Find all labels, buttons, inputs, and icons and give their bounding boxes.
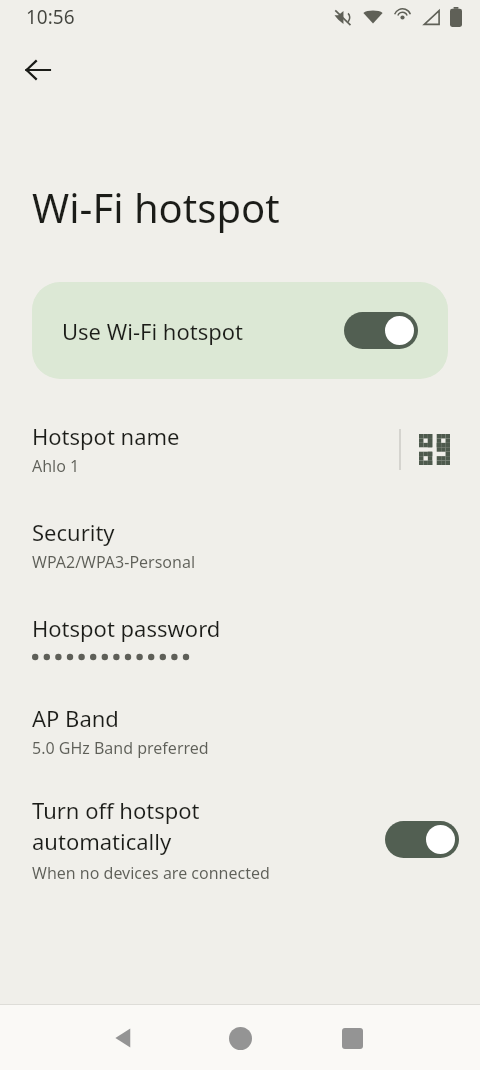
button[interactable]: Security	[0, 517, 480, 573]
staticText: When no devices are connected	[32, 862, 270, 884]
button[interactable]: Back	[101, 1014, 149, 1062]
button[interactable]: Recent apps	[328, 1014, 376, 1062]
staticText: 5.0 GHz Band preferred	[32, 737, 209, 759]
staticText: Ahlo 1	[32, 455, 80, 477]
button[interactable]: Back	[14, 46, 62, 94]
button[interactable]: Hotspot name	[0, 421, 480, 477]
staticText: Turn off hotspot automatically	[32, 795, 200, 857]
button[interactable]: Share hotspot QR code	[408, 423, 460, 475]
button[interactable]: Hotspot password	[0, 613, 480, 663]
staticText: WPA2/WPA3-Personal	[32, 551, 196, 573]
staticText: Use Wi-Fi hotspot	[62, 316, 344, 346]
staticText: Security	[32, 517, 115, 547]
staticText: AP Band	[32, 703, 119, 733]
staticText: Wi-Fi hotspot	[32, 180, 280, 234]
button[interactable]: Turn off hotspot automatically	[0, 795, 480, 884]
button[interactable]: AP Band	[0, 703, 480, 759]
staticText: Hotspot password	[32, 613, 221, 643]
staticText: 10:56	[26, 4, 75, 30]
button[interactable]: Home	[216, 1014, 264, 1062]
button[interactable]: Use Wi-Fi hotspot	[32, 282, 448, 379]
staticText: Hotspot name	[32, 421, 180, 451]
